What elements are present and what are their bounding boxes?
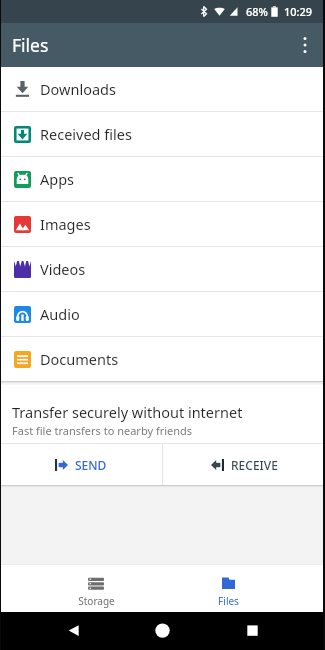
staticText: Videos <box>40 259 86 279</box>
staticText: RECEIVE <box>231 457 278 473</box>
button[interactable]: Downloads <box>0 67 325 111</box>
staticText: Files <box>12 33 49 57</box>
staticText: Apps <box>40 169 75 189</box>
button[interactable]: Storage <box>62 564 130 612</box>
button[interactable]: Files <box>194 564 262 612</box>
button[interactable]: Documents <box>0 337 325 381</box>
staticText: Images <box>40 214 91 234</box>
button[interactable]: RECEIVE <box>163 444 325 485</box>
staticText: Documents <box>40 349 119 369</box>
staticText: 68% <box>246 4 268 19</box>
button[interactable]: Audio <box>0 292 325 336</box>
staticText: Files <box>218 594 239 608</box>
staticText: Fast file transfers to nearby friends <box>12 423 193 438</box>
staticText: Downloads <box>40 79 116 99</box>
staticText: 10:29 <box>284 4 313 19</box>
staticText: Received files <box>40 124 132 144</box>
staticText: Audio <box>40 304 80 324</box>
button[interactable]: Received files <box>0 112 325 156</box>
button[interactable]: Apps <box>0 157 325 201</box>
staticText: SEND <box>75 457 107 473</box>
staticText: Storage <box>78 594 115 608</box>
button[interactable]: Images <box>0 202 325 246</box>
button[interactable]: More options <box>285 25 325 65</box>
staticText: Transfer securely without internet <box>12 402 243 422</box>
button[interactable]: Videos <box>0 247 325 291</box>
button[interactable]: SEND <box>0 444 162 485</box>
